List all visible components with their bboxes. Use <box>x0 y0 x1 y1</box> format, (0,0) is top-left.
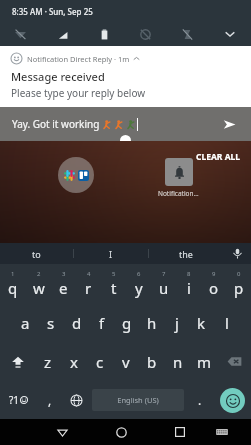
staticText: 2 <box>37 270 41 278</box>
staticText: 3 <box>62 270 66 278</box>
button[interactable] <box>58 157 94 193</box>
button[interactable]: the <box>149 243 223 264</box>
button[interactable]: Emoji <box>220 388 245 413</box>
button[interactable]: Backspace <box>217 342 251 381</box>
staticText: 1 <box>11 270 15 278</box>
button[interactable]: Notification… <box>158 158 199 198</box>
staticText: 8:35 AM · Sun, Sep 25 <box>12 6 93 17</box>
staticText: 0 <box>237 270 241 278</box>
staticText: q <box>8 278 18 298</box>
button[interactable]: 0 <box>226 264 251 303</box>
staticText: d <box>72 313 82 333</box>
button[interactable]: h <box>139 303 164 342</box>
button[interactable]: l <box>214 303 239 342</box>
staticText: n <box>173 352 183 372</box>
staticText: 4 <box>87 270 91 278</box>
staticText: I <box>109 248 113 260</box>
staticText: r <box>85 278 92 298</box>
staticText: Message received <box>11 69 105 84</box>
button[interactable]: 5 <box>101 264 126 303</box>
staticText: g <box>122 313 132 333</box>
staticText: 7 <box>162 270 166 278</box>
staticText: 8 <box>187 270 191 278</box>
staticText: Yay. Got it working <box>12 117 102 131</box>
button[interactable]: 4 <box>76 264 101 303</box>
staticText: 9 <box>212 270 216 278</box>
staticText: f <box>99 313 105 333</box>
staticText: o <box>209 278 219 298</box>
staticText: z <box>44 352 52 372</box>
staticText: 5 <box>112 270 116 278</box>
button[interactable]: f <box>89 303 114 342</box>
staticText: s <box>47 313 55 333</box>
staticText: t <box>111 278 117 298</box>
staticText: k <box>197 313 206 333</box>
button[interactable]: I <box>74 243 148 264</box>
button[interactable]: Switch keyboard <box>203 419 241 445</box>
button[interactable]: n <box>165 342 191 381</box>
staticText: u <box>159 278 169 298</box>
button[interactable]: English (US) <box>92 389 184 411</box>
button[interactable]: k <box>189 303 214 342</box>
button[interactable]: c <box>87 342 113 381</box>
staticText: c <box>96 352 104 372</box>
staticText: ?1 <box>9 393 20 407</box>
button[interactable]: Notification Direct Reply · 1m <box>0 46 251 107</box>
staticText: w <box>33 278 45 298</box>
button[interactable]: Send <box>217 112 241 136</box>
staticText: x <box>70 352 78 372</box>
button[interactable]: Collapse <box>219 23 241 45</box>
button[interactable]: 7 <box>151 264 176 303</box>
button[interactable]: d <box>64 303 89 342</box>
button[interactable]: Languages <box>63 381 89 419</box>
staticText: m <box>197 352 212 372</box>
staticText: Notification… <box>158 189 199 198</box>
button[interactable]: 6 <box>126 264 151 303</box>
staticText: Notification Direct Reply · 1m <box>27 54 130 64</box>
button[interactable]: b <box>139 342 165 381</box>
button[interactable]: . <box>187 381 213 419</box>
button[interactable]: to <box>0 243 73 264</box>
staticText: to <box>32 248 41 260</box>
button[interactable]: Home <box>102 419 140 445</box>
staticText: l <box>225 313 229 333</box>
button[interactable]: z <box>35 342 61 381</box>
button[interactable]: CLEAR ALL <box>196 151 241 163</box>
staticText: h <box>147 313 157 333</box>
button[interactable]: 1 <box>0 264 26 303</box>
button[interactable]: Shift <box>0 342 35 381</box>
button[interactable]: v <box>113 342 139 381</box>
button[interactable]: Recent apps <box>161 419 199 445</box>
staticText: , <box>48 392 52 408</box>
button[interactable]: 8 <box>176 264 201 303</box>
staticText: e <box>59 278 68 298</box>
staticText: Please type your reply below <box>11 86 146 100</box>
staticText: y <box>135 278 143 298</box>
button[interactable]: , <box>37 381 63 419</box>
button[interactable]: s <box>38 303 64 342</box>
staticText: a <box>21 313 30 333</box>
button[interactable]: 3 <box>51 264 76 303</box>
staticText: . <box>198 392 202 408</box>
button[interactable]: Back <box>43 419 81 445</box>
button[interactable]: a <box>12 303 38 342</box>
staticText: v <box>122 352 130 372</box>
staticText: i <box>187 278 191 298</box>
button[interactable]: 9 <box>201 264 226 303</box>
staticText: English (US) <box>117 395 159 405</box>
staticText: b <box>147 352 157 372</box>
button[interactable]: j <box>164 303 189 342</box>
button[interactable]: 2 <box>26 264 51 303</box>
button[interactable]: x <box>61 342 87 381</box>
button[interactable]: Voice input <box>223 243 251 264</box>
staticText: the <box>179 248 193 260</box>
staticText: j <box>175 313 179 333</box>
button[interactable]: Symbols <box>0 381 37 419</box>
button[interactable]: g <box>114 303 139 342</box>
button[interactable]: m <box>191 342 217 381</box>
staticText: 6 <box>137 270 141 278</box>
staticText: p <box>234 278 244 298</box>
